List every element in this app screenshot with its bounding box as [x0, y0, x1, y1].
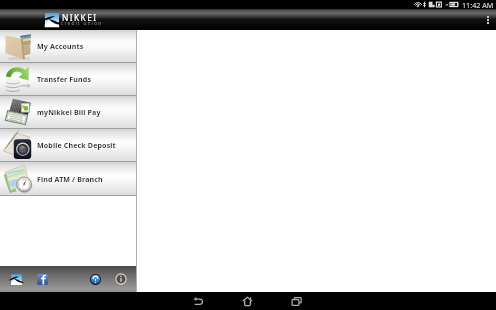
button[interactable]: Mobile Check Deposit [0, 129, 137, 161]
button[interactable]: Back [189, 292, 207, 310]
button[interactable]: My Accounts [0, 30, 137, 62]
button[interactable]: Help [84, 268, 106, 290]
button[interactable]: Find ATM / Branch [0, 162, 137, 195]
button[interactable]: Transfer Funds [0, 63, 137, 95]
button[interactable]: Facebook [31, 268, 53, 290]
button[interactable]: Nikkei Credit Union [40, 10, 102, 30]
staticText: My Accounts [37, 41, 84, 51]
staticText: Mobile Check Deposit [37, 140, 116, 150]
button[interactable]: Recent apps [287, 292, 305, 310]
staticText: Transfer Funds [37, 74, 92, 84]
button[interactable]: More options [487, 16, 489, 24]
button[interactable]: Nikkei home [5, 268, 27, 290]
staticText: 11:42 AM [462, 0, 494, 9]
staticText: myNikkei Bill Pay [37, 107, 101, 117]
button[interactable]: Home [238, 292, 256, 310]
staticText: Find ATM / Branch [37, 174, 103, 184]
button[interactable]: Info [110, 268, 132, 290]
staticText: credit union [61, 20, 103, 27]
button[interactable]: myNikkei Bill Pay [0, 96, 137, 128]
staticText: NIKKEI [62, 12, 98, 23]
